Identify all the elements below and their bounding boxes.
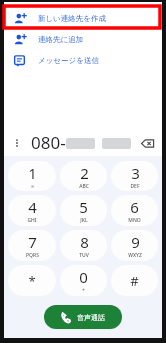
button[interactable]: 2 bbox=[60, 161, 107, 191]
staticText: 6 bbox=[130, 197, 139, 217]
button[interactable]: # bbox=[111, 265, 158, 296]
staticText: 新しい連絡先を作成 bbox=[38, 14, 107, 23]
staticText: 音声通話 bbox=[77, 313, 105, 322]
staticText: ∞ bbox=[30, 183, 35, 189]
staticText: ABC bbox=[79, 183, 89, 190]
staticText: PQRS bbox=[26, 252, 39, 259]
button[interactable]: 音声通話 bbox=[44, 305, 122, 329]
staticText: 0 bbox=[79, 267, 88, 287]
button[interactable]: 3 bbox=[111, 161, 158, 191]
staticText: 5 bbox=[79, 197, 88, 217]
staticText: 9 bbox=[131, 232, 140, 252]
staticText: 連絡先に追加 bbox=[38, 35, 84, 44]
button[interactable]: 6 bbox=[111, 195, 158, 226]
button[interactable]: 新しい連絡先を作成 bbox=[4, 8, 162, 29]
staticText: 080- bbox=[31, 131, 66, 154]
button[interactable]: 0 bbox=[60, 265, 107, 296]
staticText: # bbox=[130, 272, 139, 290]
staticText: * bbox=[28, 272, 36, 290]
staticText: GHI bbox=[27, 217, 37, 224]
staticText: 8 bbox=[80, 232, 89, 252]
staticText: メッセージを送信 bbox=[38, 56, 99, 65]
button[interactable]: * bbox=[8, 265, 56, 296]
button[interactable]: 9 bbox=[111, 230, 158, 261]
staticText: 4 bbox=[28, 197, 37, 217]
button[interactable]: Backspace bbox=[137, 133, 157, 153]
staticText: 2 bbox=[80, 163, 89, 183]
button[interactable]: More options bbox=[9, 135, 25, 151]
button[interactable]: 1 bbox=[8, 161, 56, 191]
button[interactable]: 7 bbox=[8, 230, 56, 261]
staticText: WXYZ bbox=[128, 252, 142, 259]
button[interactable]: 連絡先に追加 bbox=[4, 29, 162, 50]
staticText: MNO bbox=[128, 217, 141, 224]
staticText: TUV bbox=[79, 252, 89, 259]
button[interactable]: 5 bbox=[60, 195, 107, 226]
button[interactable]: 8 bbox=[60, 230, 107, 261]
staticText: + bbox=[82, 287, 85, 294]
button[interactable]: 4 bbox=[8, 195, 56, 226]
staticText: 3 bbox=[131, 163, 140, 183]
button[interactable]: メッセージを送信 bbox=[4, 50, 162, 71]
staticText: JKL bbox=[80, 217, 88, 224]
staticText: 1 bbox=[28, 163, 37, 183]
staticText: DEF bbox=[130, 183, 140, 190]
staticText: 7 bbox=[28, 232, 37, 252]
